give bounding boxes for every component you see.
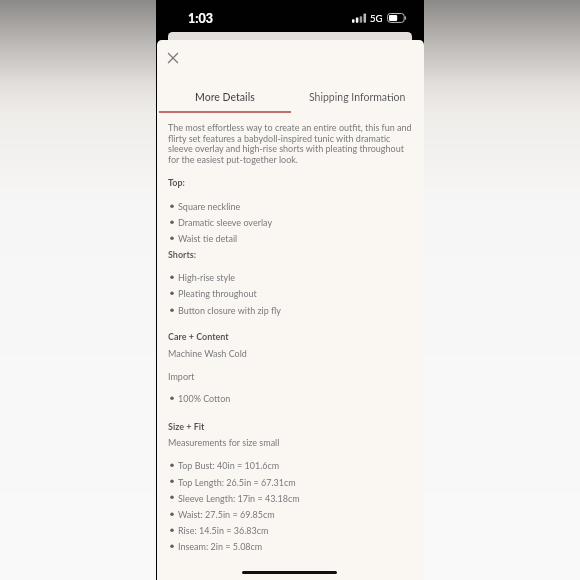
staticText: Care + Content bbox=[168, 331, 408, 342]
staticText: Pleating throughout bbox=[178, 288, 418, 299]
staticText: sleeve overlay and high-rise shorts with… bbox=[168, 143, 418, 154]
staticText: flirty set features a babydoll-inspired … bbox=[168, 133, 418, 144]
staticText: More Details bbox=[195, 91, 255, 104]
staticText: Waist: 27.5in = 69.85cm bbox=[178, 509, 418, 520]
staticText: Shorts: bbox=[168, 249, 408, 260]
staticText: Machine Wash Cold bbox=[168, 348, 408, 359]
staticText: High-rise style bbox=[178, 272, 418, 283]
staticText: Top Length: 26.5in = 67.31cm bbox=[178, 477, 418, 488]
staticText: Dramatic sleeve overlay bbox=[178, 217, 418, 228]
staticText: Button closure with zip fly bbox=[178, 305, 418, 316]
staticText: The most effortless way to create an ent… bbox=[168, 122, 418, 133]
staticText: Top: bbox=[168, 177, 408, 188]
staticText: 5G bbox=[370, 13, 383, 25]
staticText: Rise: 14.5in = 36.83cm bbox=[178, 525, 418, 536]
staticText: Shipping Information bbox=[309, 91, 406, 104]
button[interactable]: More Details bbox=[159, 84, 291, 110]
staticText: for the easiest put-together look. bbox=[168, 154, 418, 165]
staticText: Measurements for size small bbox=[168, 437, 408, 448]
staticText: 1:03 bbox=[188, 11, 213, 26]
staticText: Sleeve Length: 17in = 43.18cm bbox=[178, 493, 418, 504]
staticText: 100% Cotton bbox=[178, 393, 418, 404]
staticText: Size + Fit bbox=[168, 421, 408, 432]
button[interactable]: Shipping Information bbox=[291, 84, 423, 110]
staticText: Square neckline bbox=[178, 201, 418, 212]
staticText: Import bbox=[168, 371, 408, 382]
staticText: Waist tie detail bbox=[178, 233, 418, 244]
staticText: Inseam: 2in = 5.08cm bbox=[178, 541, 418, 552]
button[interactable]: Close bbox=[162, 47, 184, 69]
staticText: Top Bust: 40in = 101.6cm bbox=[178, 460, 418, 471]
